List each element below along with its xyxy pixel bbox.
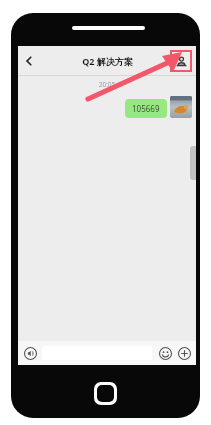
staticText: 105669 xyxy=(132,103,160,114)
button[interactable]: More xyxy=(176,345,192,361)
button[interactable]: Chat members xyxy=(170,50,192,72)
button[interactable]: Back xyxy=(18,50,40,72)
button[interactable]: Scroll handle xyxy=(190,146,196,180)
button[interactable]: Avatar xyxy=(170,96,192,118)
staticText: Q2 解决方案 xyxy=(82,55,133,67)
staticText: 20:05 xyxy=(18,80,196,89)
button[interactable]: Voice message xyxy=(22,345,38,361)
button[interactable]: Emoji xyxy=(157,345,173,361)
button[interactable]: 105669 xyxy=(125,99,167,118)
button[interactable]: Home xyxy=(97,385,114,402)
